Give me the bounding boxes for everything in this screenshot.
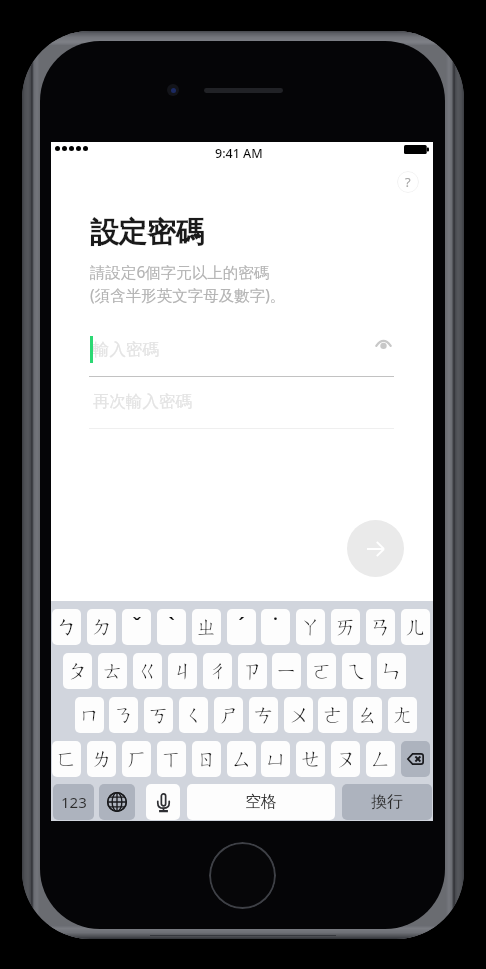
staticText: ㄢ [370, 614, 392, 640]
staticText: ㄏ [126, 746, 148, 772]
staticText: ㄎ [148, 702, 170, 728]
staticText: ˇ [132, 611, 142, 638]
staticText: ㄋ [113, 702, 135, 728]
staticText: ㄗ [242, 658, 264, 684]
staticText: ㄊ [102, 658, 124, 684]
staticText: ㄝ [300, 746, 322, 772]
staticText: ㄨ [288, 702, 310, 728]
staticText: ㄙ [231, 746, 253, 772]
button[interactable]: ㄙ [227, 741, 256, 777]
staticText: ˋ [168, 611, 175, 638]
button[interactable]: ㄢ [366, 609, 395, 645]
button[interactable]: ㄏ [122, 741, 151, 777]
staticText: ㄟ [346, 658, 368, 684]
staticText: 換行 [371, 792, 403, 812]
staticText: ˊ [238, 611, 245, 638]
button[interactable]: ㄧ [272, 653, 301, 689]
staticText: 再次輸入密碼 [93, 391, 192, 412]
button[interactable]: Help [397, 171, 419, 193]
staticText: 設定密碼 [90, 215, 204, 251]
button[interactable]: ˊ [227, 609, 256, 645]
button[interactable]: ㄍ [133, 653, 162, 689]
button[interactable]: ㄠ [353, 697, 382, 733]
button[interactable]: ㄋ [109, 697, 138, 733]
button[interactable]: ㄤ [388, 697, 417, 733]
button[interactable]: ㄥ [366, 741, 395, 777]
staticText: ㄐ [172, 658, 194, 684]
button[interactable]: Voice input [146, 784, 180, 820]
staticText: ㄇ [79, 702, 101, 728]
button[interactable]: 123 [53, 784, 94, 820]
staticText: 123 [61, 792, 87, 812]
staticText: ㄡ [335, 746, 357, 772]
button[interactable]: ㄜ [318, 697, 347, 733]
button[interactable]: ㄗ [238, 653, 267, 689]
button[interactable]: ㄌ [87, 741, 116, 777]
button[interactable]: ㄛ [307, 653, 336, 689]
button[interactable]: Next [347, 520, 404, 577]
button[interactable]: ㄔ [203, 653, 232, 689]
staticText: ㄖ [196, 746, 218, 772]
staticText: ㄕ [218, 702, 240, 728]
button[interactable]: ㄒ [157, 741, 186, 777]
button[interactable]: ㄅ [52, 609, 81, 645]
button[interactable]: ㄆ [63, 653, 92, 689]
staticText: ˙ [273, 611, 278, 638]
button[interactable]: 再次輸入密碼 [89, 387, 394, 429]
staticText: ㄘ [253, 702, 275, 728]
staticText: ㄅ [56, 614, 78, 640]
staticText: ㄤ [392, 702, 414, 728]
staticText: ㄛ [311, 658, 333, 684]
staticText: ㄩ [265, 746, 287, 772]
button[interactable]: ㄩ [261, 741, 290, 777]
staticText: ㄆ [67, 658, 89, 684]
button[interactable]: ㄖ [192, 741, 221, 777]
button[interactable]: ˇ [122, 609, 151, 645]
staticText: ㄔ [207, 658, 229, 684]
staticText: ㄓ [196, 614, 218, 640]
staticText: ㄣ [381, 658, 403, 684]
button[interactable]: ㄘ [249, 697, 278, 733]
button[interactable]: ㄞ [331, 609, 360, 645]
button[interactable]: 空格 [187, 784, 335, 820]
button[interactable]: ㄐ [168, 653, 197, 689]
button[interactable]: ㄦ [401, 609, 430, 645]
staticText: ㄦ [405, 614, 427, 640]
button[interactable]: ㄨ [284, 697, 313, 733]
button[interactable]: ˙ [261, 609, 290, 645]
button[interactable]: ㄕ [214, 697, 243, 733]
staticText: 請設定6個字元以上的密碼 (須含半形英文字母及數字)。 [90, 261, 286, 306]
staticText: ㄠ [357, 702, 379, 728]
button[interactable]: ㄇ [75, 697, 104, 733]
staticText: ㄍ [137, 658, 159, 684]
button[interactable]: ˋ [157, 609, 186, 645]
button[interactable]: ㄣ [377, 653, 406, 689]
staticText: ㄑ [183, 702, 205, 728]
staticText: ㄉ [91, 614, 113, 640]
staticText: ㄚ [300, 614, 322, 640]
staticText: ㄥ [370, 746, 392, 772]
staticText: 9:41 AM [215, 145, 263, 162]
button[interactable]: ㄎ [144, 697, 173, 733]
button[interactable]: 換行 [342, 784, 432, 820]
button[interactable]: Change keyboard [99, 784, 135, 820]
button[interactable]: 輸入密碼 [89, 335, 394, 377]
staticText: ㄞ [335, 614, 357, 640]
staticText: 空格 [245, 792, 277, 812]
button[interactable]: ㄓ [192, 609, 221, 645]
button[interactable]: ㄚ [296, 609, 325, 645]
staticText: 輸入密碼 [93, 339, 159, 360]
staticText: ㄈ [56, 746, 78, 772]
button[interactable]: ㄈ [52, 741, 81, 777]
button[interactable]: Backspace [401, 741, 430, 777]
button[interactable]: ㄝ [296, 741, 325, 777]
staticText: ㄧ [276, 658, 298, 684]
button[interactable]: ㄟ [342, 653, 371, 689]
staticText: ㄒ [161, 746, 183, 772]
staticText: ? [405, 173, 411, 191]
button[interactable]: ㄉ [87, 609, 116, 645]
button[interactable]: ㄊ [98, 653, 127, 689]
button[interactable]: ㄡ [331, 741, 360, 777]
button[interactable]: ㄑ [179, 697, 208, 733]
staticText: ㄌ [91, 746, 113, 772]
